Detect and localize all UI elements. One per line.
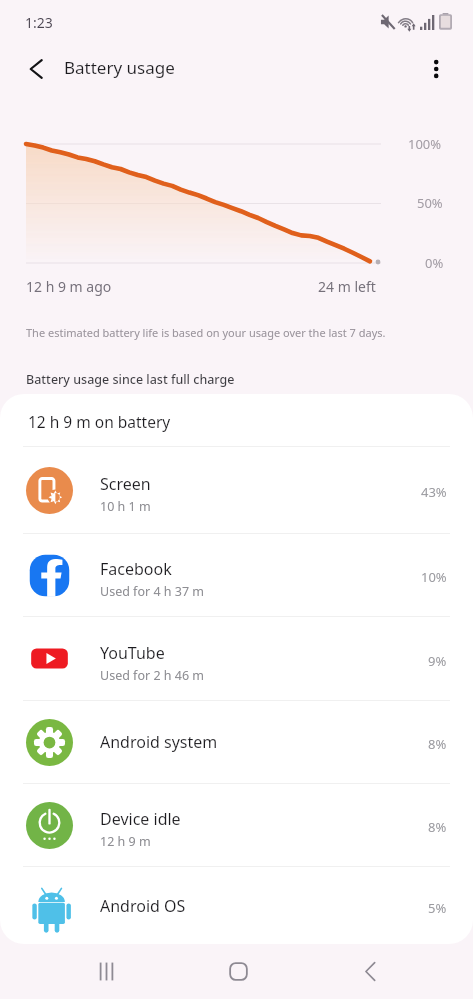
staticText: 0%: [425, 254, 444, 272]
staticText: Battery usage: [64, 56, 175, 79]
button[interactable]: YouTube: [0, 617, 473, 700]
staticText: 100%: [408, 135, 442, 153]
staticText: The estimated battery life is based on y…: [26, 325, 386, 340]
staticText: 8%: [428, 735, 447, 753]
button[interactable]: Android system: [0, 701, 473, 783]
button[interactable]: Device idle: [0, 784, 473, 866]
staticText: 1:23: [25, 13, 53, 32]
button[interactable]: Facebook: [0, 534, 473, 616]
staticText: 12 h 9 m on battery: [28, 411, 171, 432]
staticText: Screen: [100, 473, 151, 495]
staticText: 50%: [417, 194, 443, 212]
button[interactable]: Back: [342, 943, 398, 999]
button[interactable]: Screen: [0, 447, 473, 533]
staticText: 9%: [428, 652, 447, 670]
button[interactable]: Back: [14, 47, 58, 91]
staticText: Device idle: [100, 808, 181, 830]
staticText: Facebook: [100, 558, 172, 580]
staticText: Android OS: [100, 895, 186, 917]
staticText: YouTube: [100, 642, 165, 664]
staticText: 8%: [428, 818, 447, 836]
staticText: 24 m left: [318, 277, 376, 296]
staticText: Android system: [100, 731, 218, 753]
staticText: Used for 2 h 46 m: [100, 667, 205, 684]
staticText: 12 h 9 m ago: [26, 277, 112, 296]
staticText: 12 h 9 m: [100, 833, 151, 850]
button[interactable]: Home: [210, 943, 266, 999]
staticText: 43%: [421, 483, 447, 501]
staticText: 5%: [428, 899, 447, 917]
staticText: Battery usage since last full charge: [26, 371, 235, 388]
staticText: 10%: [421, 568, 447, 586]
button[interactable]: Recents: [78, 943, 134, 999]
staticText: Used for 4 h 37 m: [100, 583, 205, 600]
button[interactable]: More options: [414, 47, 458, 91]
button[interactable]: Android OS: [0, 867, 473, 944]
staticText: 10 h 1 m: [100, 498, 151, 515]
